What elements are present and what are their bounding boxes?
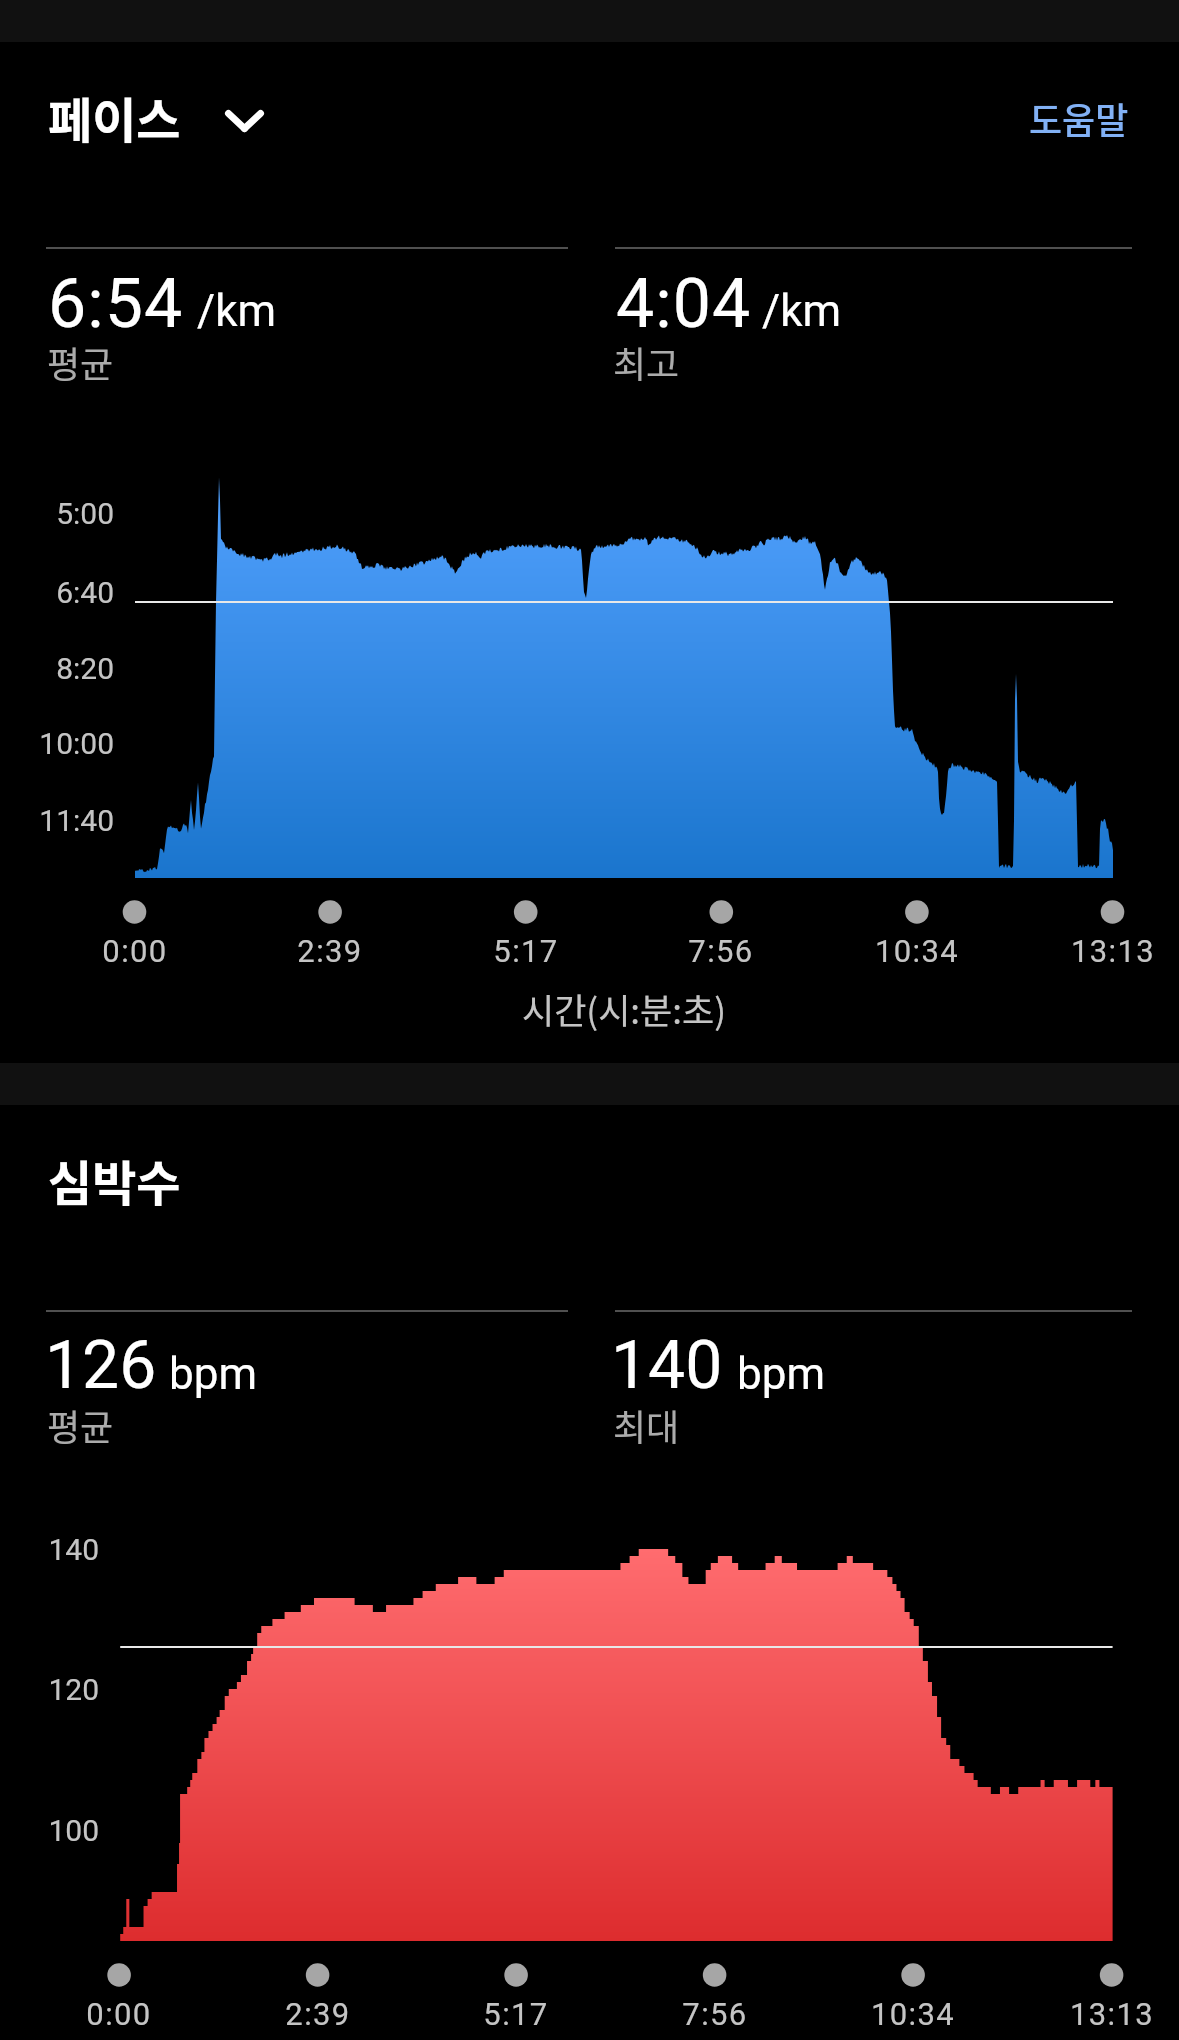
staticText: 0:00	[0, 1996, 349, 2032]
staticText: 8:20	[0, 651, 114, 686]
staticText: bpm	[737, 1348, 825, 1400]
staticText: 140	[0, 1532, 99, 1567]
staticText: 평균	[47, 336, 114, 388]
staticText: 126	[45, 1327, 157, 1404]
staticText: 도움말	[1029, 92, 1129, 144]
staticText: 최대	[613, 1399, 680, 1451]
staticText: 10:34	[683, 1996, 1143, 2032]
button[interactable]: 페이스	[40, 78, 274, 150]
staticText: 5:17	[296, 933, 756, 969]
staticText: /km	[762, 285, 842, 337]
staticText: 100	[0, 1813, 99, 1848]
staticText: 120	[0, 1672, 99, 1707]
staticText: 7:56	[491, 933, 951, 969]
staticText: 심박수	[48, 1145, 181, 1215]
staticText: 6:54	[48, 264, 184, 344]
staticText: 4:04	[616, 264, 752, 344]
staticText: 시간(시:분:초)	[394, 983, 854, 1034]
staticText: 13:13	[883, 933, 1179, 969]
button[interactable]: 도움말	[1014, 78, 1140, 150]
staticText: bpm	[169, 1348, 257, 1400]
staticText: 5:17	[286, 1996, 746, 2032]
staticText: 2:39	[100, 933, 560, 969]
staticText: 10:34	[687, 933, 1147, 969]
staticText: 2:39	[88, 1996, 548, 2032]
staticText: 최고	[613, 336, 680, 388]
staticText: 6:40	[0, 575, 114, 610]
button: 심박수	[40, 1141, 188, 1213]
staticText: 페이스	[48, 82, 181, 152]
staticText: 0:00	[0, 933, 365, 969]
staticText: /km	[197, 285, 277, 337]
staticText: 13:13	[882, 1996, 1179, 2032]
staticText: 평균	[47, 1399, 114, 1451]
staticText: 5:00	[0, 496, 114, 531]
staticText: 140	[611, 1327, 723, 1404]
staticText: 10:00	[0, 726, 114, 761]
staticText: 7:56	[485, 1996, 945, 2032]
staticText: 11:40	[0, 803, 114, 838]
